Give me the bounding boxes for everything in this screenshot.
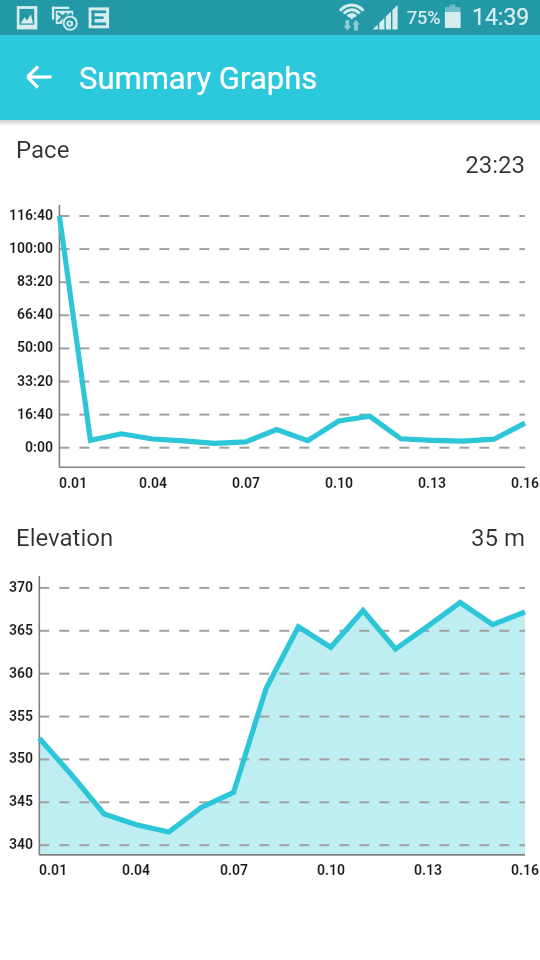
staticText: 0.13 xyxy=(392,475,472,491)
staticText: 0.07 xyxy=(206,475,286,491)
staticText: Pace xyxy=(16,136,70,164)
staticText: 0.07 xyxy=(194,862,274,878)
staticText: 0.16 xyxy=(485,862,540,878)
staticText: 345 xyxy=(0,793,33,809)
staticText: 14:39 xyxy=(472,4,530,31)
staticText: 350 xyxy=(0,750,33,766)
staticText: 66:40 xyxy=(0,306,53,322)
staticText: 35 m xyxy=(300,524,525,552)
staticText: 0.16 xyxy=(485,475,540,491)
staticText: 100:00 xyxy=(0,240,53,256)
staticText: 360 xyxy=(0,665,33,681)
staticText: 340 xyxy=(0,836,33,852)
staticText: 0.04 xyxy=(113,475,193,491)
staticText: 0.10 xyxy=(299,475,379,491)
staticText: 116:40 xyxy=(0,207,53,223)
staticText: 370 xyxy=(0,579,33,595)
staticText: 355 xyxy=(0,708,33,724)
staticText: 0.01 xyxy=(59,475,139,491)
staticText: Summary Graphs xyxy=(79,60,318,96)
staticText: 83:20 xyxy=(0,273,53,289)
staticText: 365 xyxy=(0,622,33,638)
staticText: 0.04 xyxy=(96,862,176,878)
staticText: 16:40 xyxy=(0,406,53,422)
staticText: 23:23 xyxy=(300,151,525,179)
staticText: Elevation xyxy=(16,524,114,552)
staticText: 50:00 xyxy=(0,339,53,355)
staticText: 33:20 xyxy=(0,373,53,389)
staticText: 0.01 xyxy=(39,862,119,878)
staticText: 75% xyxy=(407,7,441,28)
staticText: 0.10 xyxy=(291,862,371,878)
staticText: 0:00 xyxy=(0,439,53,455)
button[interactable]: Navigate up xyxy=(4,45,68,109)
staticText: 0.13 xyxy=(388,862,468,878)
